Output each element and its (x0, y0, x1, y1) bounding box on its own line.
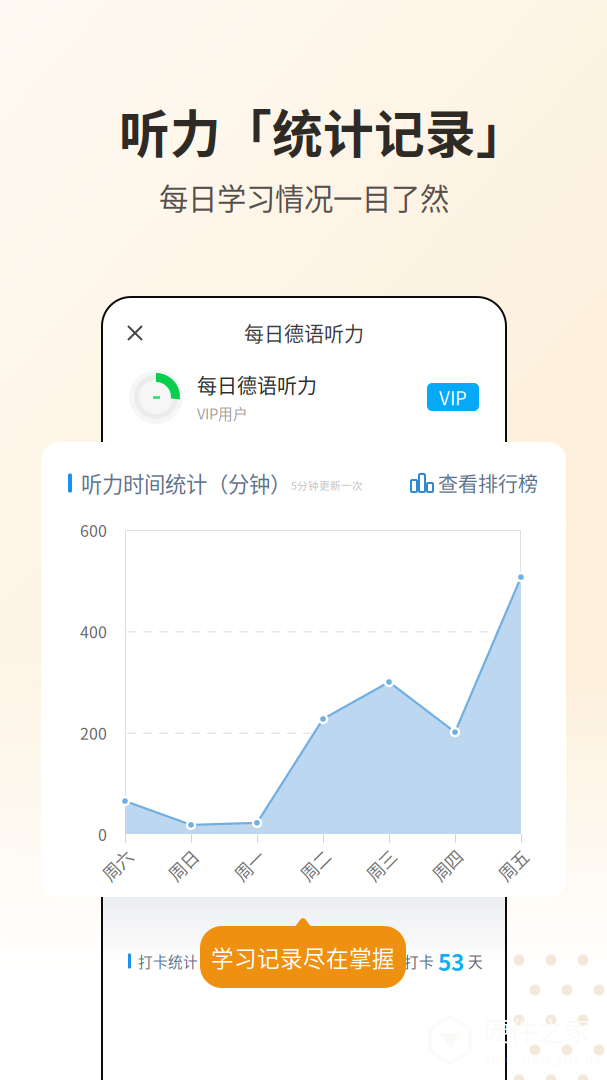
staticText: 每日学习情况一目了然 (159, 176, 449, 218)
staticText: 学习记录尽在掌握 (211, 941, 395, 973)
button[interactable]: 查看排行榜 (411, 468, 538, 497)
staticText: 查看排行榜 (438, 468, 538, 497)
staticText: 天 (468, 950, 483, 972)
staticText: 每日德语听力 (244, 318, 364, 347)
button[interactable]: Close (117, 315, 153, 351)
staticText: 周三 (364, 852, 398, 878)
staticText: YING JIAN ZHI JIA.COM (483, 1049, 607, 1070)
staticText: 200 (80, 721, 107, 744)
staticText: 600 (80, 518, 107, 542)
staticText: 听力「统计记录」 (119, 94, 527, 168)
staticText: 打卡 (404, 950, 434, 972)
staticText: 周五 (496, 852, 530, 878)
staticText: 400 (80, 620, 107, 643)
staticText: VIP (439, 383, 467, 410)
staticText: 周四 (430, 852, 464, 878)
button[interactable]: VIP (427, 383, 479, 411)
staticText: VIP用户 (197, 402, 248, 424)
staticText: 0 (98, 822, 107, 846)
staticText: 周六 (100, 852, 134, 878)
staticText: 听力时间统计（分钟） (81, 468, 291, 498)
staticText: 5分钟更新一次 (291, 477, 363, 493)
staticText: 硬件之家 (483, 1010, 591, 1049)
staticText: 每日德语听力 (197, 370, 317, 399)
staticText: 周一 (232, 852, 266, 878)
staticText: 周二 (298, 852, 332, 878)
staticText: 打卡统计 (138, 950, 198, 972)
staticText: 周日 (166, 852, 200, 878)
staticText: 53 (438, 945, 464, 977)
